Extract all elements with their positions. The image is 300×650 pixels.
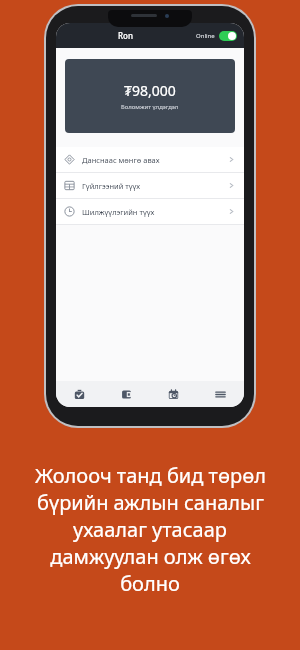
staticText: Ron [118, 30, 133, 41]
button[interactable]: Wallet [103, 381, 150, 407]
staticText: дамжуулан олж өгөх [50, 543, 251, 570]
button[interactable]: Jobs [56, 381, 103, 407]
staticText: Жолооч танд бид төрөл [35, 462, 266, 489]
staticText: бүрийн ажлын саналыг [37, 489, 264, 516]
button[interactable]: Данснаас мөнгө авах [56, 147, 244, 172]
button[interactable]: Online toggle [219, 31, 237, 41]
button[interactable]: Шилжүүлэгийн түүх [56, 199, 244, 224]
button[interactable]: Гүйлгээний түүх [56, 173, 244, 198]
staticText: Боломжит үлдэгдэл [121, 103, 179, 111]
staticText: Данснаас мөнгө авах [82, 155, 160, 165]
staticText: болно [120, 570, 180, 597]
button[interactable]: History [150, 381, 197, 407]
button[interactable]: Menu [197, 381, 244, 407]
staticText: ухаалаг утасаар [73, 516, 227, 543]
button[interactable]: ₮98,000 [65, 59, 235, 133]
staticText: Online [196, 32, 215, 40]
staticText: Шилжүүлэгийн түүх [82, 207, 155, 217]
staticText: ₮98,000 [124, 81, 176, 100]
staticText: Гүйлгээний түүх [82, 181, 141, 191]
